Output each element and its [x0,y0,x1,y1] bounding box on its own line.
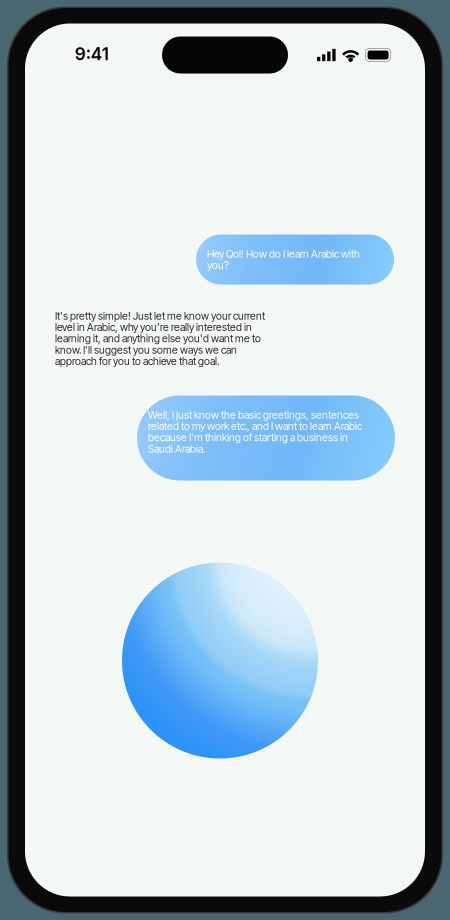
button[interactable]: Well, I just know the basic greetings, s… [137,395,395,480]
staticText: It's pretty simple! Just let me know you… [55,309,265,368]
staticText: Hey Qoi! How do I learn Arabic with you? [207,247,360,271]
button[interactable]: Hey Qoi! How do I learn Arabic with you? [196,234,394,284]
staticText: 9:41 [75,43,109,64]
staticText: Well, I just know the basic greetings, s… [148,408,362,455]
